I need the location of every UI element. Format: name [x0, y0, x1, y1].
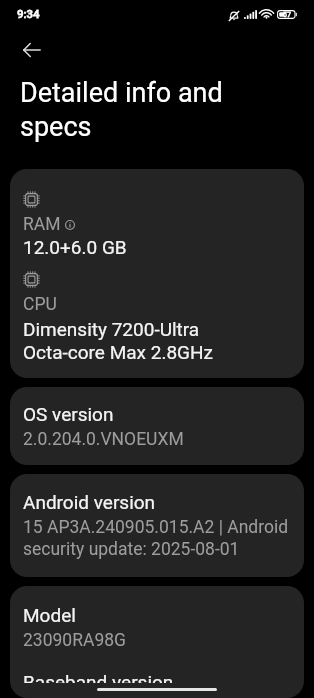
- button[interactable]: Model: [10, 586, 304, 698]
- staticText: 15 AP3A.240905.015.A2 | Android security…: [23, 516, 291, 560]
- staticText: 12.0+6.0 GB: [23, 235, 127, 259]
- staticText: 2.0.204.0.VNOEUXM: [23, 428, 184, 450]
- staticText: 57: [283, 11, 291, 19]
- button[interactable]: RAM: [10, 169, 304, 378]
- staticText: 9:34: [17, 7, 40, 20]
- staticText: Baseband version: [23, 670, 174, 683]
- staticText: Android version: [23, 490, 156, 514]
- staticText: CPU: [23, 293, 57, 315]
- button[interactable]: Back: [12, 30, 52, 70]
- staticText: Model: [23, 603, 76, 627]
- staticText: Detailed info and specs: [20, 75, 256, 143]
- staticText: OS version: [23, 402, 114, 426]
- staticText: RAM: [23, 213, 61, 235]
- button[interactable]: OS version: [10, 387, 304, 465]
- button[interactable]: Android version: [10, 474, 304, 577]
- staticText: 23090RA98G: [23, 629, 126, 651]
- staticText: Dimensity 7200-Ultra Octa-core Max 2.8GH…: [23, 317, 213, 363]
